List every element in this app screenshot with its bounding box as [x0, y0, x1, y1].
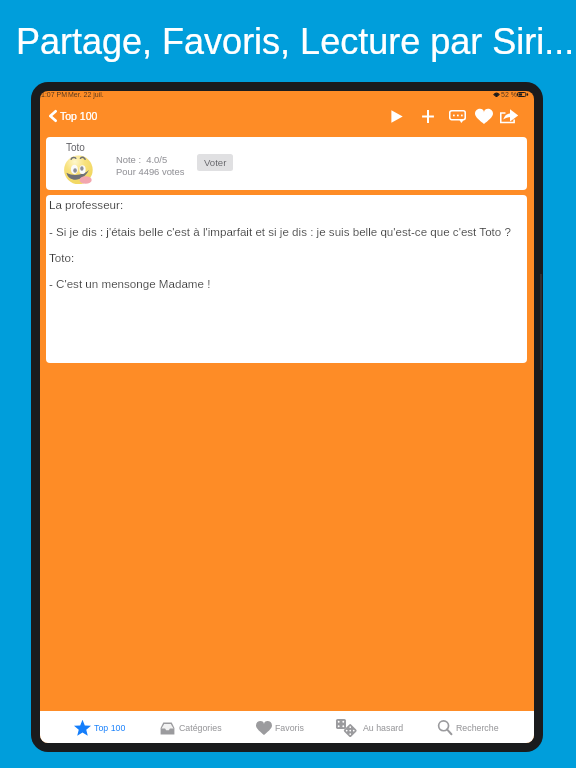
staticText: 52 %	[501, 91, 517, 99]
button[interactable]: Share	[496, 103, 522, 129]
staticText: Top 100	[94, 723, 126, 733]
button[interactable]: Voter	[197, 154, 233, 171]
button[interactable]: Play	[384, 103, 410, 129]
staticText: Catégories	[179, 723, 222, 733]
button[interactable]: Toto	[46, 137, 527, 190]
staticText: Mer. 22 juil.	[68, 91, 104, 99]
button[interactable]: Top 100	[45, 105, 103, 127]
staticText: - Si je dis : j'étais belle c'est à l'im…	[49, 225, 511, 238]
button[interactable]: Favorite	[471, 103, 497, 129]
staticText: Partage, Favoris, Lecture par Siri...	[16, 21, 575, 61]
staticText: Voter	[204, 157, 227, 168]
staticText: - C'est un mensonge Madame !	[49, 277, 211, 290]
staticText: Top 100	[60, 110, 98, 122]
button[interactable]: Add	[415, 103, 441, 129]
button[interactable]	[250, 711, 346, 743]
staticText: Toto:	[49, 251, 75, 264]
staticText: La professeur:	[49, 198, 124, 211]
staticText: Pour 4496 votes	[116, 166, 185, 177]
staticText: Toto	[66, 142, 85, 153]
button[interactable]	[68, 711, 164, 743]
staticText: Favoris	[275, 723, 304, 733]
button[interactable]: Comments	[444, 103, 470, 129]
staticText: 1:07 PM	[41, 91, 68, 99]
button[interactable]	[432, 711, 528, 743]
button[interactable]: La professeur:	[46, 195, 527, 363]
button[interactable]	[154, 711, 250, 743]
staticText: Au hasard	[363, 723, 404, 733]
staticText: Recherche	[456, 723, 499, 733]
button[interactable]	[330, 711, 426, 743]
staticText: Note : 4.0/5	[116, 154, 168, 165]
